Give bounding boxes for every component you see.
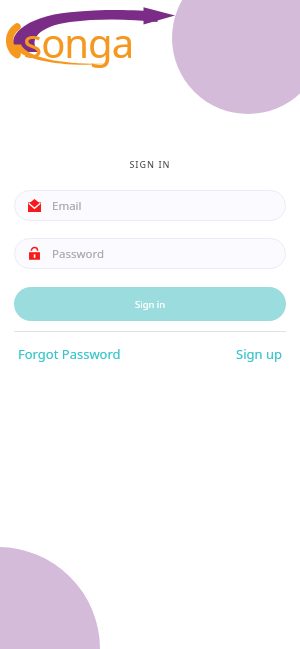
button[interactable]: Password bbox=[14, 238, 286, 269]
other: Email bbox=[28, 199, 41, 212]
staticText: SIGN IN bbox=[14, 158, 286, 170]
other: Password bbox=[28, 247, 41, 260]
staticText: Email bbox=[52, 198, 82, 214]
button[interactable]: Sign in bbox=[14, 287, 286, 321]
button[interactable]: Email bbox=[14, 190, 286, 221]
staticText: Forgot Password bbox=[18, 345, 121, 363]
staticText: songa bbox=[23, 15, 134, 69]
staticText: Password bbox=[52, 246, 105, 262]
staticText: Sign in bbox=[135, 298, 166, 311]
staticText: Sign up bbox=[236, 345, 282, 363]
button[interactable]: Sign up bbox=[232, 342, 286, 366]
button[interactable]: Forgot Password bbox=[14, 342, 125, 366]
